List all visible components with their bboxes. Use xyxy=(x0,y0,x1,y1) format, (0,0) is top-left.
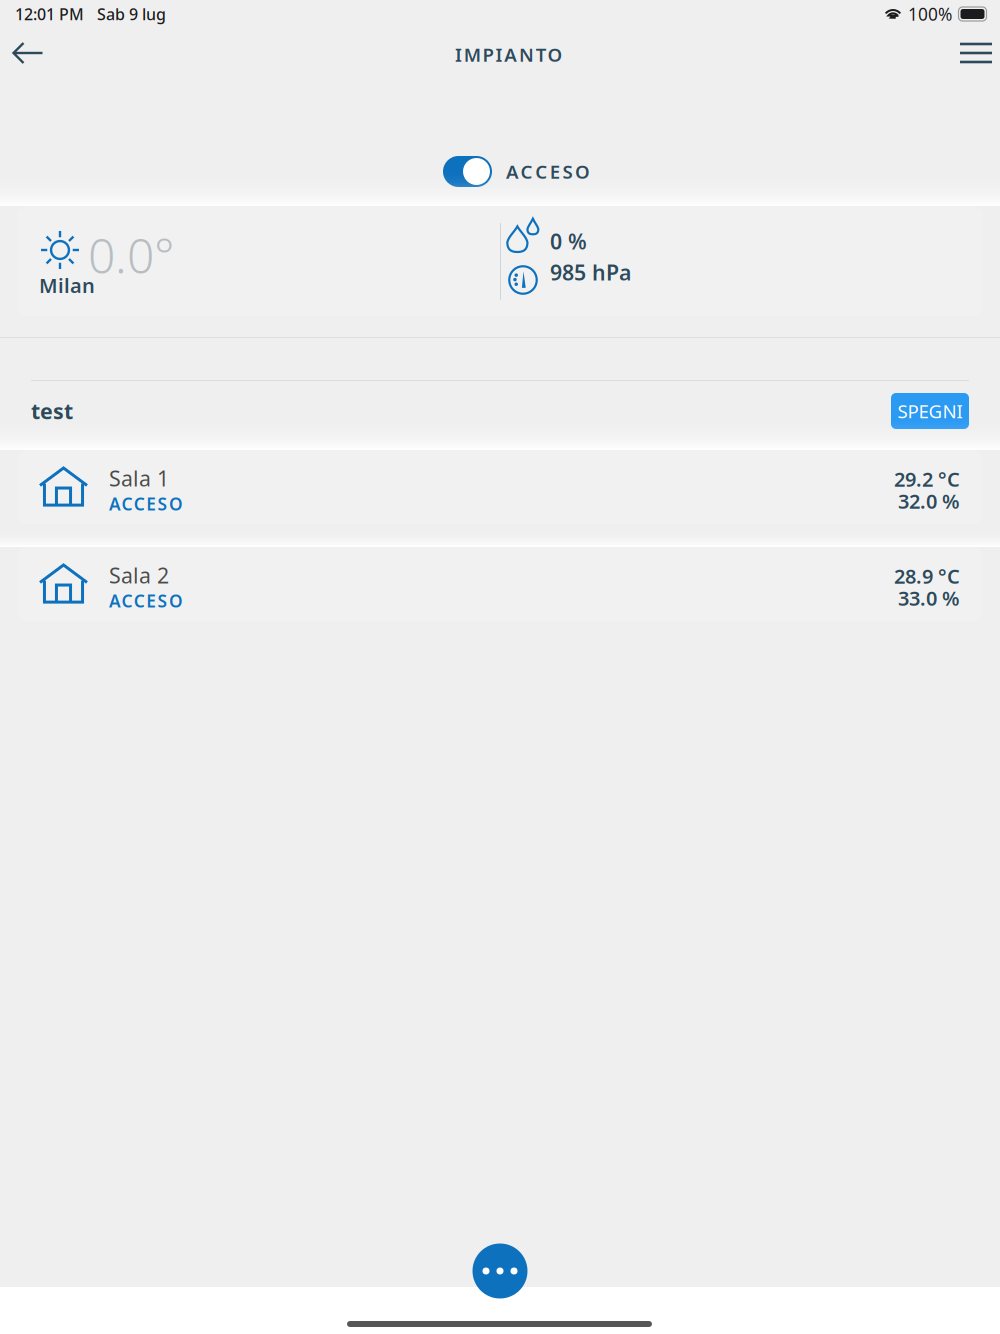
staticText: SPEGNI xyxy=(897,399,962,423)
staticText: 32.0 % xyxy=(898,488,960,514)
staticText: Milan xyxy=(39,272,95,299)
staticText: 0.0° xyxy=(88,223,175,287)
staticText: 985 hPa xyxy=(550,258,631,286)
button[interactable]: More options xyxy=(472,1243,527,1298)
staticText: 28.9 °C xyxy=(894,563,960,589)
staticText: 12:01 PM xyxy=(15,3,84,25)
staticText: Sala 2 xyxy=(109,561,169,589)
button[interactable]: ACCESO xyxy=(443,156,563,187)
button[interactable]: Sala 2 xyxy=(17,547,983,621)
staticText: ACCESO xyxy=(109,492,196,515)
staticText: 29.2 °C xyxy=(894,466,960,492)
staticText: Sala 1 xyxy=(109,464,169,492)
staticText: Sab 9 lug xyxy=(97,3,166,25)
staticText: IMPIANTO xyxy=(455,42,576,67)
staticText: ACCESO xyxy=(506,159,605,184)
button[interactable]: Menu xyxy=(944,28,1000,78)
button[interactable]: Sala 1 xyxy=(17,450,983,524)
button[interactable]: SPEGNI xyxy=(891,393,969,429)
staticText: ACCESO xyxy=(109,589,196,612)
staticText: 33.0 % xyxy=(898,585,960,611)
staticText: 100% xyxy=(908,2,952,25)
staticText: test xyxy=(31,397,73,425)
staticText: 0 % xyxy=(550,227,587,255)
button[interactable]: Back xyxy=(0,28,60,78)
